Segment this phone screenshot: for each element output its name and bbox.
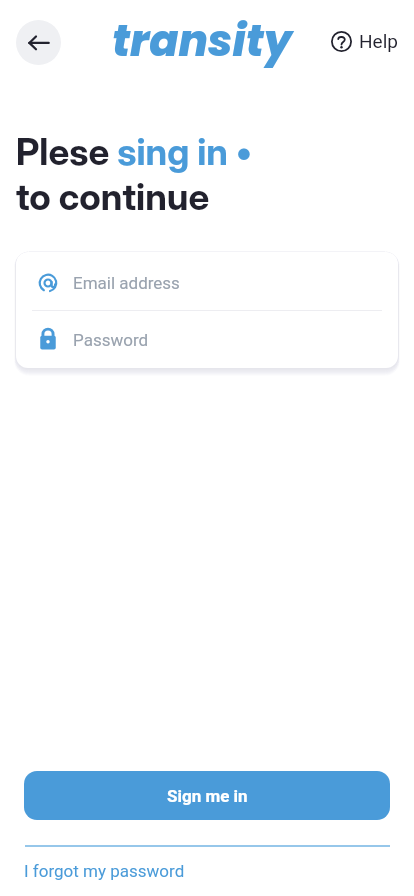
button[interactable]: Password <box>16 311 398 368</box>
staticText: to continue <box>16 174 210 219</box>
button[interactable]: Back <box>16 20 61 65</box>
staticText: I forgot my password <box>24 861 185 881</box>
staticText: Sign me in <box>167 786 248 806</box>
staticText: Help <box>359 30 398 52</box>
staticText: Plese sing in • <box>16 129 252 174</box>
button[interactable]: Help <box>327 26 402 56</box>
staticText: Email address <box>73 273 180 293</box>
button[interactable]: Sign me in <box>24 771 390 820</box>
staticText: transity <box>112 11 292 71</box>
button[interactable]: I forgot my password <box>24 861 185 881</box>
button[interactable]: Email address <box>16 252 398 310</box>
staticText: Password <box>73 330 149 350</box>
